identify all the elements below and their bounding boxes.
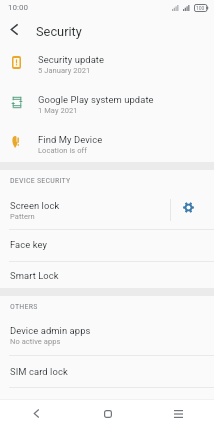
- button[interactable]: Recent apps: [143, 399, 214, 428]
- staticText: Device admin apps: [10, 325, 91, 336]
- staticText: Security: [36, 24, 82, 39]
- button[interactable]: Face key: [0, 229, 214, 261]
- button[interactable]: Find My Device: [0, 122, 214, 162]
- staticText: OTHERS: [10, 302, 38, 311]
- staticText: DEVICE SECURITY: [10, 176, 71, 185]
- button[interactable]: Security update: [0, 42, 214, 82]
- button[interactable]: Back: [0, 399, 72, 428]
- staticText: Google Play system update: [38, 94, 154, 105]
- staticText: SIM card lock: [10, 366, 68, 377]
- button[interactable]: Device admin apps: [0, 322, 214, 355]
- staticText: Security update: [38, 54, 105, 65]
- staticText: Location is off: [38, 146, 87, 155]
- button[interactable]: SIM card lock: [0, 355, 214, 387]
- staticText: 5 January 2021: [38, 66, 91, 75]
- staticText: 10:00: [8, 3, 28, 12]
- staticText: 1 May 2021: [38, 106, 78, 115]
- staticText: 100: [196, 5, 205, 11]
- button[interactable]: Google Play system update: [0, 82, 214, 122]
- button[interactable]: Screen lock settings: [171, 196, 214, 229]
- button[interactable]: Screen lock: [0, 196, 214, 229]
- button[interactable]: Navigate up: [0, 16, 29, 42]
- button[interactable]: Home: [72, 399, 143, 428]
- staticText: No active apps: [10, 337, 61, 346]
- staticText: Pattern: [10, 212, 35, 221]
- button[interactable]: Smart Lock: [0, 261, 214, 289]
- staticText: Find My Device: [38, 134, 103, 145]
- staticText: Screen lock: [10, 200, 60, 211]
- staticText: Smart Lock: [10, 270, 59, 281]
- staticText: Face key: [10, 239, 48, 250]
